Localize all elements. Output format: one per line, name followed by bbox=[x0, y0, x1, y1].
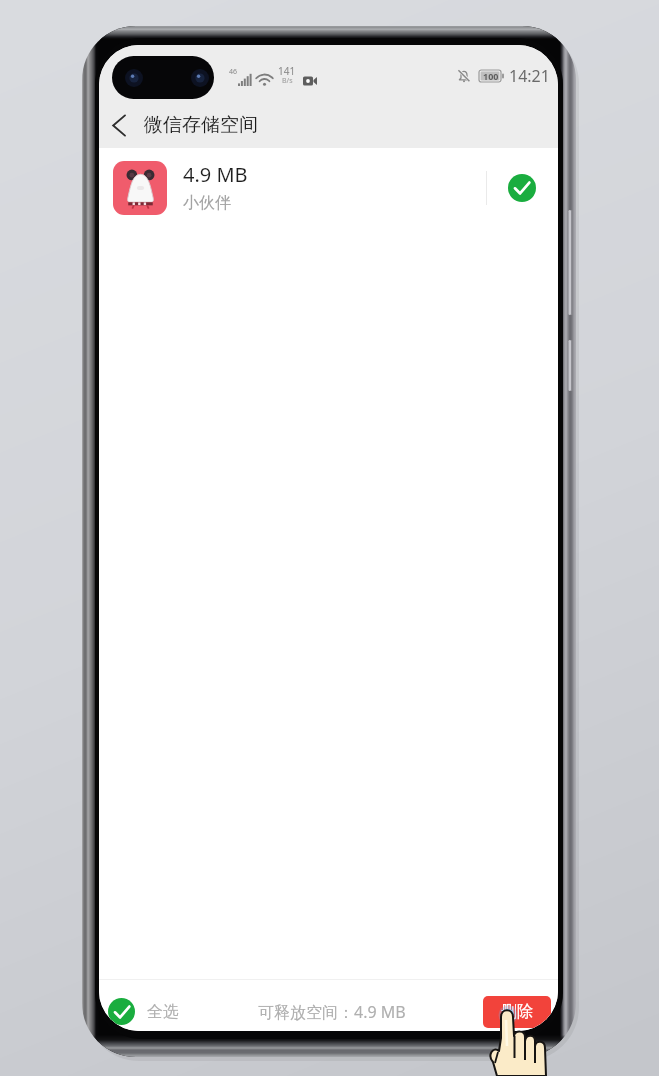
staticText: 微信存储空间 bbox=[144, 113, 258, 137]
staticText: 100 bbox=[483, 70, 499, 82]
staticText: 4.9 MB bbox=[183, 161, 248, 188]
button[interactable]: 全选 bbox=[108, 998, 179, 1025]
button[interactable]: Back bbox=[99, 103, 139, 148]
staticText: B/s bbox=[282, 76, 293, 86]
staticText: 可释放空间：4.9 MB bbox=[258, 1001, 406, 1023]
staticText: 全选 bbox=[147, 1002, 179, 1022]
staticText: 141 bbox=[278, 64, 296, 78]
staticText: 46 bbox=[229, 67, 238, 77]
button[interactable]: 删除 bbox=[483, 996, 551, 1028]
staticText: 14:21 bbox=[509, 65, 550, 87]
staticText: 删除 bbox=[501, 1002, 533, 1022]
button[interactable]: 4.9 MB bbox=[99, 148, 558, 228]
staticText: 小伙伴 bbox=[183, 193, 231, 213]
